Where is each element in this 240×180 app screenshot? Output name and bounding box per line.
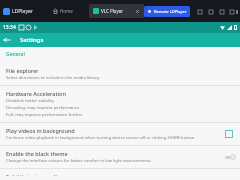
button[interactable]: File explorer [0, 63, 240, 85]
staticText: Full: may improve performance further [6, 112, 83, 118]
staticText: Home [60, 8, 73, 14]
button[interactable]: Volume [194, 6, 205, 17]
staticText: Disabled: better stability [6, 98, 54, 104]
button[interactable]: VLC Player [89, 4, 144, 18]
staticText: Decoding: may improve performance [6, 105, 80, 111]
button[interactable]: Remote LDPlayer [144, 6, 190, 17]
staticText: VLC Player [101, 8, 124, 14]
staticText: Enable the black theme [6, 150, 68, 157]
button[interactable]: Fullscreen [227, 6, 237, 17]
staticText: 13:34 [3, 24, 16, 31]
button[interactable]: Hardware Acceleration [0, 86, 240, 122]
staticText: Change the interface colours for better … [6, 158, 152, 164]
button[interactable]: More [216, 6, 227, 17]
button[interactable]: Subtitle text encoding [0, 169, 240, 180]
staticText: General [6, 51, 25, 58]
staticText: Play videos in background [6, 127, 75, 134]
staticText: LDPlayer [12, 8, 33, 15]
staticText: Settings [20, 36, 44, 44]
staticText: Hardware Acceleration [6, 90, 66, 97]
button[interactable]: Enable the black theme [0, 146, 240, 168]
button[interactable]: Home [49, 6, 77, 16]
staticText: Subtitle text encoding [6, 173, 64, 176]
button[interactable]: Close tab [134, 8, 140, 14]
staticText: Continue video playback in background wh… [6, 135, 196, 141]
staticText: Select directories to include in the med… [6, 75, 100, 81]
staticText: Remote LDPlayer [154, 9, 187, 14]
button[interactable]: Enable the black theme toggle [220, 151, 236, 163]
button[interactable]: Settings [205, 6, 216, 17]
button[interactable]: Play videos in background [0, 123, 240, 145]
button[interactable]: Play videos in background toggle [222, 127, 236, 141]
button[interactable]: Back [0, 33, 14, 47]
staticText: File explorer [6, 67, 39, 74]
